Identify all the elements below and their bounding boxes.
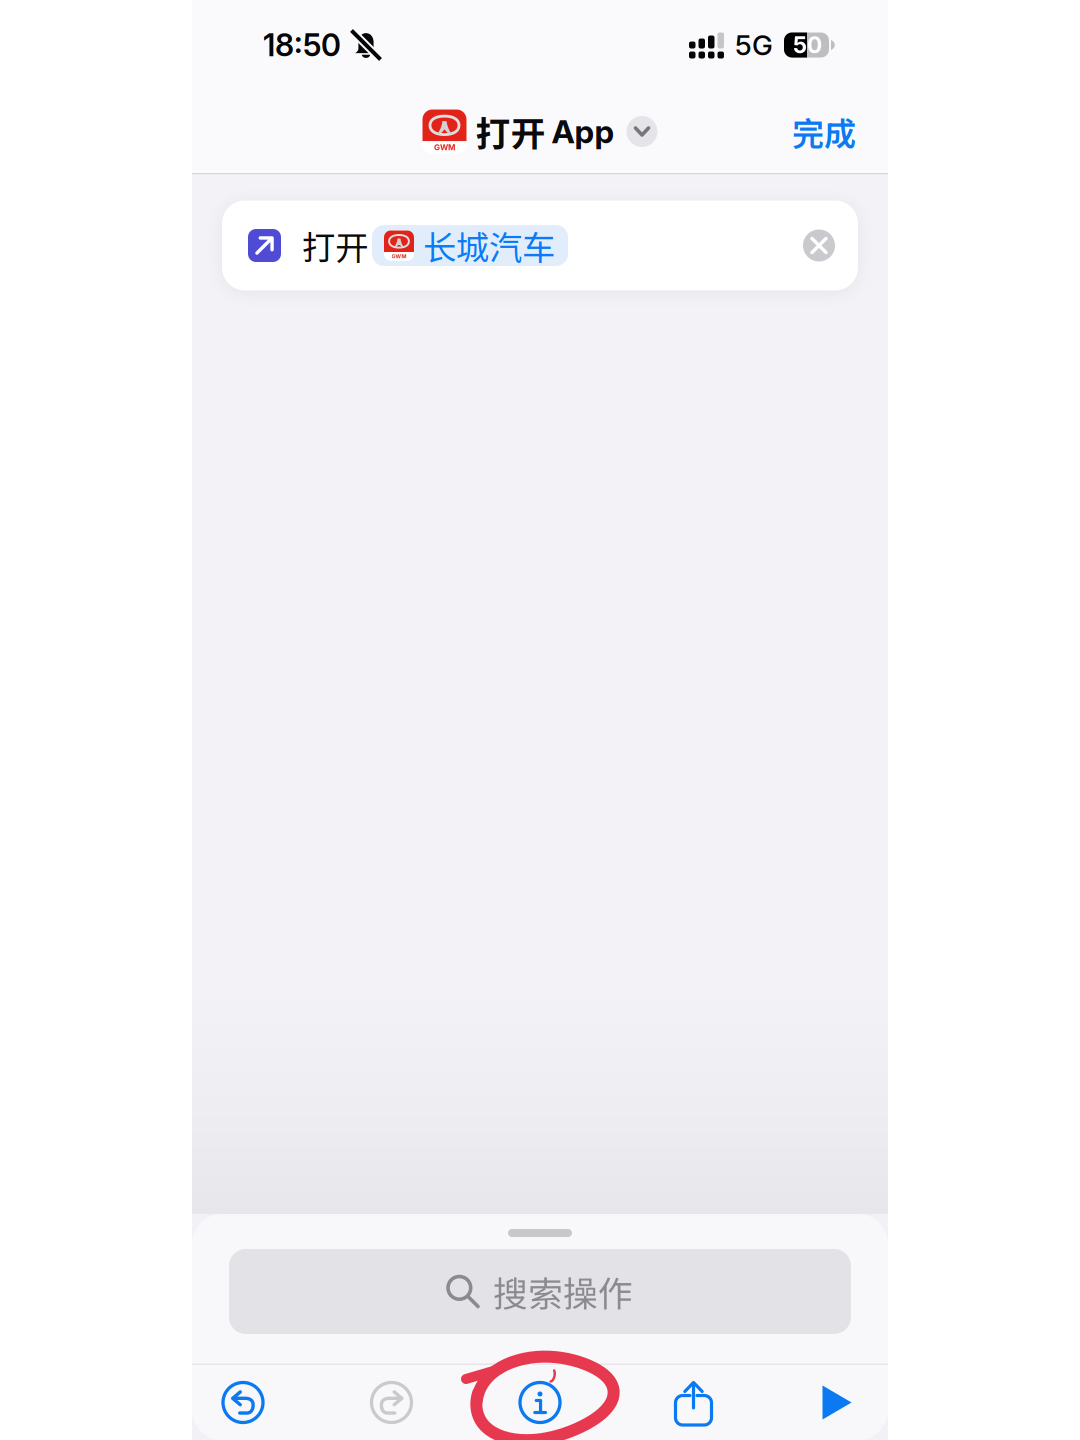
button[interactable]: 完成 bbox=[778, 98, 870, 165]
staticText: 搜索操作 bbox=[493, 1266, 633, 1317]
staticText: 长城汽车 bbox=[423, 221, 555, 270]
button[interactable]: 打开 bbox=[222, 200, 858, 290]
button[interactable]: Redo bbox=[368, 1365, 414, 1440]
button[interactable]: Details bbox=[517, 1365, 563, 1440]
button[interactable]: GWM bbox=[422, 106, 657, 157]
staticText: 完成 bbox=[792, 108, 856, 155]
button[interactable]: 搜索操作 bbox=[192, 1249, 888, 1334]
staticText: GWM bbox=[434, 142, 455, 152]
staticText: 50 bbox=[793, 31, 822, 59]
staticText: App bbox=[551, 112, 614, 151]
staticText: GWM bbox=[391, 253, 406, 260]
staticText: 5G bbox=[735, 28, 773, 62]
staticText: 18:50 bbox=[263, 26, 341, 63]
button[interactable]: Share bbox=[665, 1365, 711, 1440]
button[interactable]: Run bbox=[814, 1365, 860, 1440]
button[interactable]: Undo bbox=[220, 1365, 266, 1440]
staticText: 打开 bbox=[475, 106, 545, 157]
staticText: 打开 bbox=[302, 221, 368, 270]
